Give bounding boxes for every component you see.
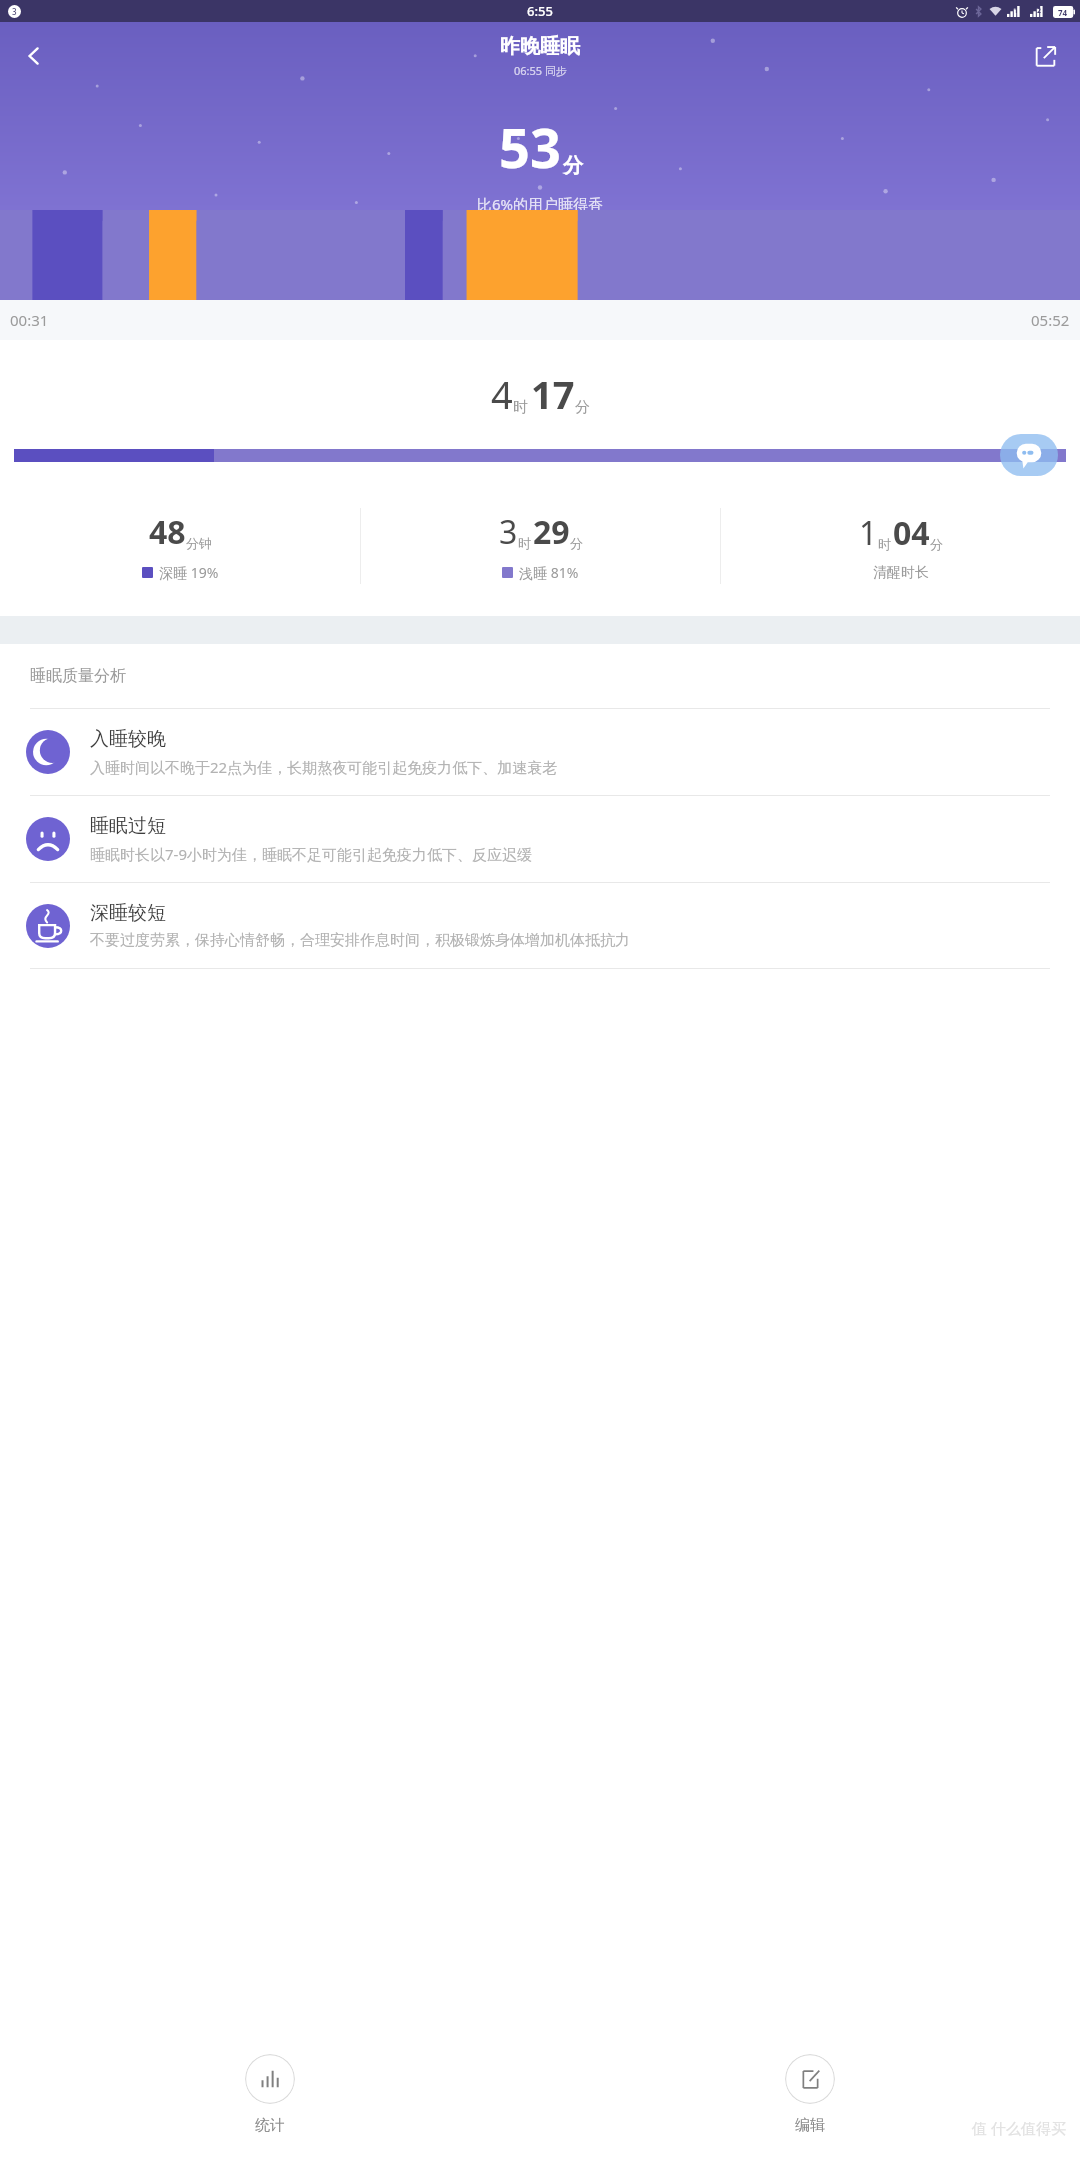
staticText: 昨晚睡眠 <box>500 34 580 59</box>
staticText: 浅睡 81% <box>519 563 579 582</box>
button[interactable]: Feedback <box>1000 434 1058 476</box>
staticText: 53 <box>499 110 561 184</box>
button[interactable]: 深睡较短 <box>0 883 1080 968</box>
staticText: 比6%的用户睡得香 <box>477 194 604 210</box>
staticText: 分 <box>930 536 943 552</box>
staticText: 分 <box>575 398 590 417</box>
staticText: 分 <box>570 535 583 551</box>
button[interactable]: 3 <box>361 490 720 602</box>
staticText: 04 <box>893 511 930 555</box>
staticText: 统计 <box>255 2116 285 2135</box>
staticText: 深睡较短 <box>90 901 166 925</box>
staticText: 3 <box>499 510 518 554</box>
button[interactable]: 1 <box>721 490 1080 602</box>
button[interactable]: Back <box>10 32 58 80</box>
staticText: 清醒时长 <box>873 564 929 582</box>
staticText: 时 <box>878 536 891 552</box>
staticText: 入睡时间以不晚于22点为佳，长期熬夜可能引起免疫力低下、加速衰老 <box>90 757 558 777</box>
staticText: 1 <box>1014 6 1019 16</box>
button[interactable]: 48 <box>0 490 360 602</box>
staticText: 睡眠时长以7-9小时为佳，睡眠不足可能引起免疫力低下、反应迟缓 <box>90 844 532 864</box>
staticText: 睡眠过短 <box>90 814 166 838</box>
button[interactable]: 入睡较晚 <box>0 709 1080 795</box>
button[interactable]: 编辑 <box>540 2042 1080 2160</box>
button[interactable]: 睡眠过短 <box>0 796 1080 882</box>
button[interactable]: Share <box>1022 33 1068 79</box>
staticText: 1 <box>859 511 878 555</box>
staticText: 深睡 19% <box>159 563 219 582</box>
staticText: 值 什么值得买 <box>972 2118 1066 2138</box>
button[interactable]: 统计 <box>0 2042 540 2160</box>
staticText: 74 <box>1058 7 1068 18</box>
staticText: 不要过度劳累，保持心情舒畅，合理安排作息时间，积极锻炼身体增加机体抵抗力 <box>90 931 630 950</box>
staticText: 4 <box>491 368 513 420</box>
staticText: 6:55 <box>527 2 553 20</box>
staticText: 分钟 <box>186 535 212 551</box>
staticText: 时 <box>518 535 531 551</box>
staticText: 00:31 <box>10 310 49 330</box>
staticText: 睡眠质量分析 <box>30 666 126 686</box>
staticText: 入睡较晚 <box>90 727 166 751</box>
staticText: 分 <box>563 153 583 178</box>
staticText: 29 <box>533 510 570 554</box>
staticText: 17 <box>531 368 575 420</box>
staticText: 48 <box>149 510 186 554</box>
staticText: 05:52 <box>1031 310 1070 330</box>
staticText: 时 <box>513 398 528 417</box>
staticText: 2 <box>1037 6 1042 16</box>
staticText: 3 <box>12 6 17 17</box>
staticText: 编辑 <box>795 2116 825 2135</box>
staticText: 06:55 同步 <box>514 63 567 78</box>
